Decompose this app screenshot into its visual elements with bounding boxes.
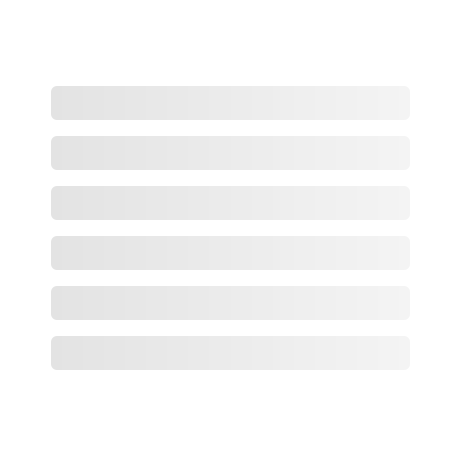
button[interactable]: Loading item 3 bbox=[51, 186, 410, 220]
button[interactable]: Loading item 2 bbox=[51, 136, 410, 170]
button[interactable]: Loading item 5 bbox=[51, 286, 410, 320]
button[interactable]: Loading item 4 bbox=[51, 236, 410, 270]
button[interactable]: Loading item 6 bbox=[51, 336, 410, 370]
button[interactable]: Loading item 1 bbox=[51, 86, 410, 120]
